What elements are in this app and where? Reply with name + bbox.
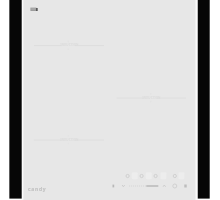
staticText: INDUCTION — [60, 138, 79, 142]
staticText: INDUCTION — [142, 96, 161, 100]
staticText: INDUCTION — [60, 43, 79, 47]
staticText: candy — [28, 186, 47, 193]
